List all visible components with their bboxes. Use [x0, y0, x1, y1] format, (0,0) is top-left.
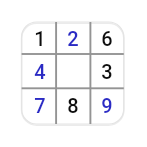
staticText: 2 [67, 27, 79, 50]
button[interactable]: Cell 6 [90, 22, 123, 54]
button[interactable]: Empty cell [56, 54, 90, 88]
button[interactable]: Cell 7 [22, 87, 57, 123]
staticText: 4 [34, 60, 46, 83]
staticText: 7 [34, 94, 46, 117]
button[interactable]: Cell 3 [90, 54, 123, 88]
staticText: 8 [67, 94, 79, 117]
staticText: 6 [101, 27, 113, 50]
button[interactable]: Cell 4 [22, 54, 57, 88]
staticText: 9 [101, 94, 113, 117]
button[interactable]: Cell 9 [90, 87, 123, 123]
button[interactable]: Cell 8 [56, 87, 90, 123]
button[interactable]: Cell 1 [22, 22, 57, 54]
staticText: 1 [34, 27, 46, 50]
button[interactable]: Cell 2 [56, 22, 90, 54]
staticText: 3 [101, 60, 113, 83]
